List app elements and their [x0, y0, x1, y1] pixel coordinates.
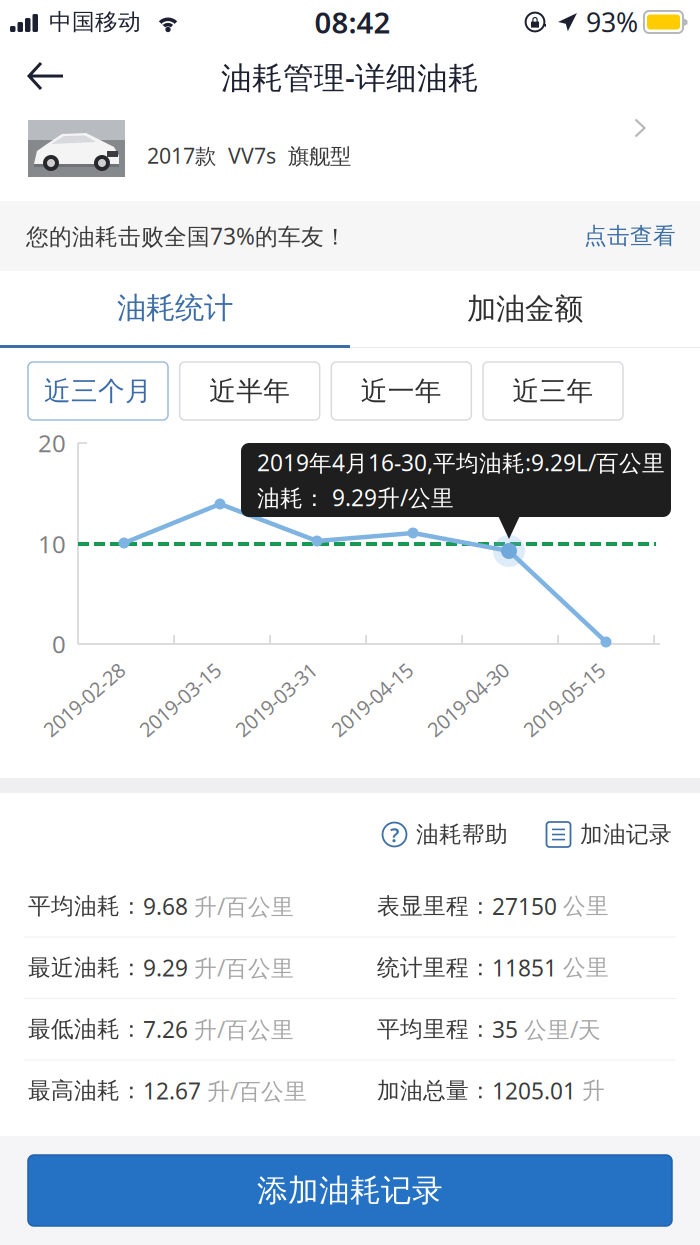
staticText: 最高油耗： — [28, 1077, 143, 1105]
staticText: 35 — [492, 1014, 524, 1044]
staticText: 2019-04-30 — [417, 684, 517, 710]
staticText: 油耗帮助 — [416, 821, 508, 848]
button[interactable]: ? — [382, 811, 508, 858]
button[interactable]: 添加油耗记录 — [28, 1155, 672, 1226]
staticText: 加油金额 — [467, 291, 583, 327]
staticText: 9.68 — [143, 891, 194, 921]
staticText: 10 — [38, 528, 66, 560]
button[interactable]: 2017款 VV7s 旗舰型 — [0, 110, 700, 201]
staticText: 2019年4月16-30,平均油耗:9.29L/百公里 — [257, 447, 665, 477]
staticText: 公里 — [563, 954, 609, 982]
staticText: 9.29 — [143, 953, 194, 983]
staticText: 表显里程： — [377, 892, 492, 920]
staticText: 最近油耗： — [28, 954, 143, 982]
staticText: 12.67 — [143, 1076, 207, 1106]
staticText: 加油总量： — [377, 1077, 492, 1105]
staticText: 最低油耗： — [28, 1015, 143, 1043]
staticText: 2019-02-28 — [33, 684, 133, 710]
button[interactable]: 点击查看 — [584, 212, 676, 260]
staticText: 近三年 — [512, 375, 593, 407]
button[interactable]: 近一年 — [331, 362, 471, 420]
staticText: 27150 — [492, 891, 563, 921]
staticText: 2019-04-15 — [321, 684, 421, 710]
staticText: 平均油耗： — [28, 892, 143, 920]
staticText: 平均里程： — [377, 1015, 492, 1043]
staticText: 2017款 VV7s 旗舰型 — [147, 141, 351, 170]
staticText: 油耗管理-详细油耗 — [221, 57, 479, 97]
staticText: 统计里程： — [377, 954, 492, 982]
staticText: 升/百公里 — [194, 1014, 294, 1044]
button[interactable]: 返回 — [0, 45, 86, 109]
staticText: 升 — [582, 1077, 605, 1105]
staticText: 公里/天 — [524, 1014, 601, 1044]
button[interactable]: 加油记录 — [508, 811, 672, 858]
staticText: 93% — [586, 4, 638, 40]
staticText: 2019-05-15 — [513, 684, 613, 710]
staticText: 近三个月 — [44, 375, 152, 407]
staticText: 油耗统计 — [117, 290, 233, 326]
staticText: 升/百公里 — [194, 891, 294, 921]
button[interactable]: 近三个月 — [28, 362, 168, 420]
staticText: 添加油耗记录 — [257, 1172, 443, 1209]
staticText: 点击查看 — [584, 222, 676, 250]
staticText: 您的油耗击败全国73%的车友！ — [26, 221, 347, 251]
staticText: 加油记录 — [580, 821, 672, 848]
button[interactable]: 近三年 — [483, 362, 623, 420]
staticText: 中国移动 — [49, 8, 141, 36]
staticText: 近一年 — [361, 375, 442, 407]
staticText: 2019-03-15 — [129, 684, 229, 710]
staticText: 公里 — [563, 892, 609, 920]
button[interactable]: 油耗统计 — [0, 271, 350, 348]
staticText: 近半年 — [209, 375, 290, 407]
staticText: ? — [390, 821, 399, 848]
staticText: 升/百公里 — [194, 953, 294, 983]
staticText: 11851 — [492, 953, 563, 983]
button[interactable]: 近半年 — [180, 362, 320, 420]
staticText: 2019-03-31 — [225, 684, 325, 710]
button[interactable]: 加油金额 — [350, 271, 700, 348]
staticText: 0 — [52, 628, 66, 660]
staticText: 1205.01 — [492, 1076, 582, 1106]
staticText: 7.26 — [143, 1014, 194, 1044]
staticText: 油耗： 9.29升/公里 — [257, 482, 454, 513]
staticText: 20 — [38, 427, 66, 459]
staticText: 08:42 — [314, 2, 390, 41]
staticText: 升/百公里 — [207, 1076, 307, 1106]
